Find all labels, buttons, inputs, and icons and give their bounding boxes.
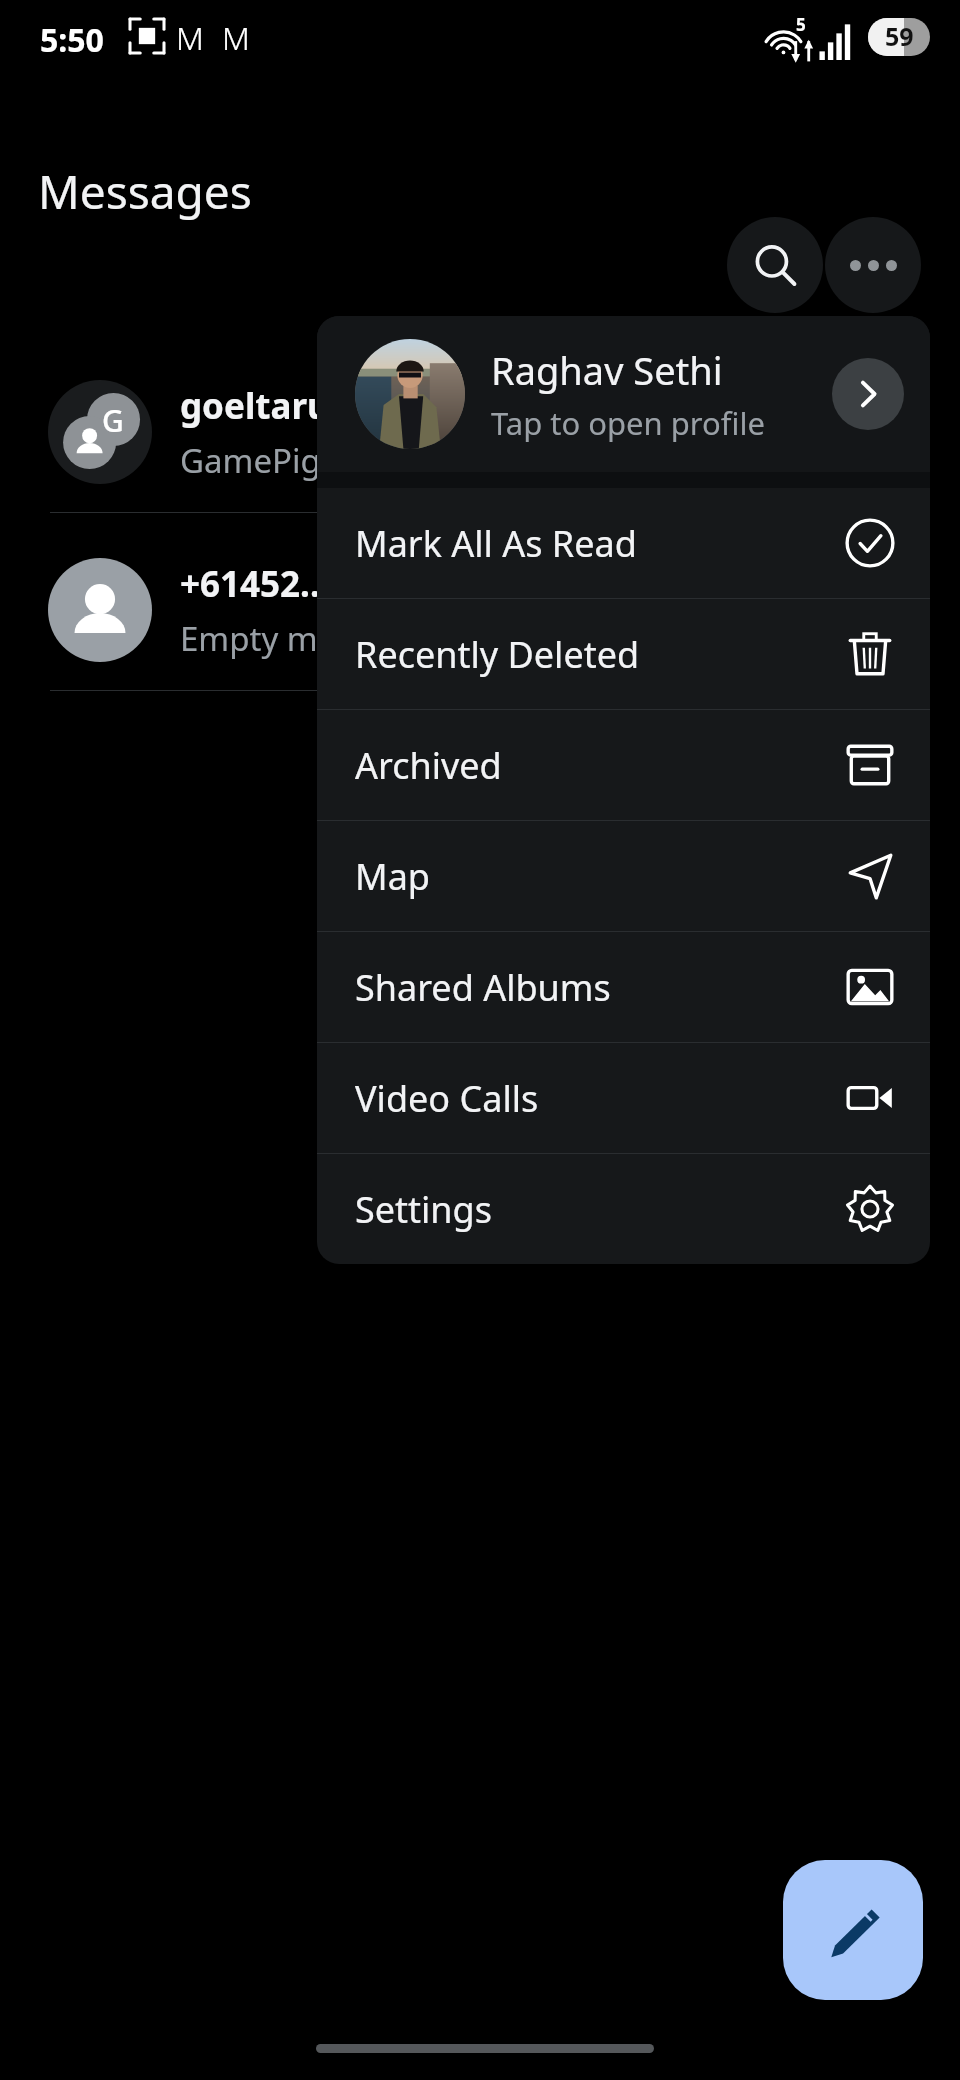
button[interactable]: +61452... <box>0 530 960 690</box>
staticText: Settings <box>355 1185 844 1234</box>
button[interactable]: More options <box>825 217 921 313</box>
button[interactable]: Open profile <box>832 358 904 430</box>
staticText: Empty message <box>180 616 426 661</box>
staticText: Archived <box>355 741 844 790</box>
staticText: G <box>102 400 124 441</box>
staticText: M <box>222 16 250 60</box>
staticText: GamePigeon Message <box>180 438 526 483</box>
staticText: Recently Deleted <box>355 630 844 679</box>
button[interactable]: Map <box>317 821 930 931</box>
button[interactable]: Archived <box>317 710 930 820</box>
staticText: 5:50 <box>40 18 104 62</box>
staticText: 59 <box>885 19 914 53</box>
button[interactable]: Video Calls <box>317 1043 930 1153</box>
staticText: Messages <box>38 160 252 223</box>
button[interactable]: Raghav Sethi <box>317 316 930 472</box>
button[interactable]: Search <box>727 217 823 313</box>
staticText: Shared Albums <box>355 963 844 1012</box>
staticText: goeltarun <box>180 382 353 430</box>
button[interactable]: G <box>0 352 960 512</box>
button[interactable]: Recently Deleted <box>317 599 930 709</box>
button[interactable]: Mark All As Read <box>317 488 930 598</box>
button[interactable]: Shared Albums <box>317 932 930 1042</box>
staticText: Video Calls <box>355 1074 844 1123</box>
button[interactable]: Compose new message <box>783 1860 923 2000</box>
staticText: Tap to open profile <box>491 402 765 444</box>
button[interactable]: Settings <box>317 1154 930 1264</box>
staticText: Map <box>355 852 844 901</box>
staticText: Raghav Sethi <box>491 344 723 396</box>
staticText: 5 <box>796 13 806 36</box>
staticText: Mark All As Read <box>355 519 844 568</box>
staticText: M <box>176 16 204 60</box>
staticText: +61452... <box>180 560 330 608</box>
